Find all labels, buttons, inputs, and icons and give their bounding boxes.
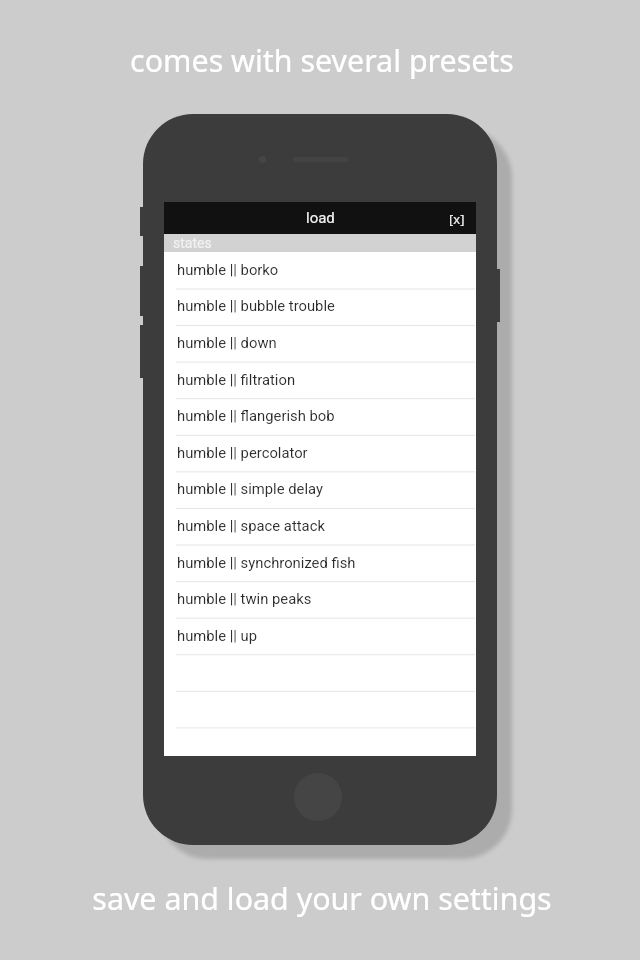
button[interactable]: humble || twin peaks bbox=[164, 581, 476, 618]
button[interactable]: Home bbox=[294, 773, 342, 821]
button[interactable]: humble || filtration bbox=[164, 362, 476, 399]
button[interactable]: humble || up bbox=[164, 618, 476, 655]
button[interactable]: humble || simple delay bbox=[164, 471, 476, 508]
staticText: humble || down bbox=[177, 334, 277, 351]
staticText: load bbox=[306, 209, 335, 227]
staticText: save and load your own settings bbox=[2, 878, 640, 919]
staticText: humble || simple delay bbox=[177, 480, 323, 497]
button[interactable]: Close bbox=[439, 202, 476, 234]
button[interactable]: humble || synchronized fish bbox=[164, 545, 476, 582]
staticText: [x] bbox=[449, 210, 465, 228]
staticText: humble || synchronized fish bbox=[177, 554, 356, 571]
button[interactable]: humble || space attack bbox=[164, 508, 476, 545]
staticText: comes with several presets bbox=[2, 40, 640, 81]
staticText: humble || up bbox=[177, 627, 258, 644]
button[interactable]: humble || down bbox=[164, 325, 476, 362]
staticText: states bbox=[173, 235, 212, 251]
button[interactable]: humble || flangerish bob bbox=[164, 398, 476, 435]
staticText: humble || bubble trouble bbox=[177, 297, 335, 314]
staticText: humble || space attack bbox=[177, 517, 325, 534]
button[interactable]: humble || bubble trouble bbox=[164, 288, 476, 325]
staticText: humble || borko bbox=[177, 261, 279, 278]
button[interactable]: humble || borko bbox=[164, 252, 476, 289]
staticText: humble || filtration bbox=[177, 371, 296, 388]
staticText: humble || twin peaks bbox=[177, 590, 312, 607]
staticText: humble || flangerish bob bbox=[177, 407, 335, 424]
staticText: humble || percolator bbox=[177, 444, 308, 461]
button[interactable]: humble || percolator bbox=[164, 435, 476, 472]
